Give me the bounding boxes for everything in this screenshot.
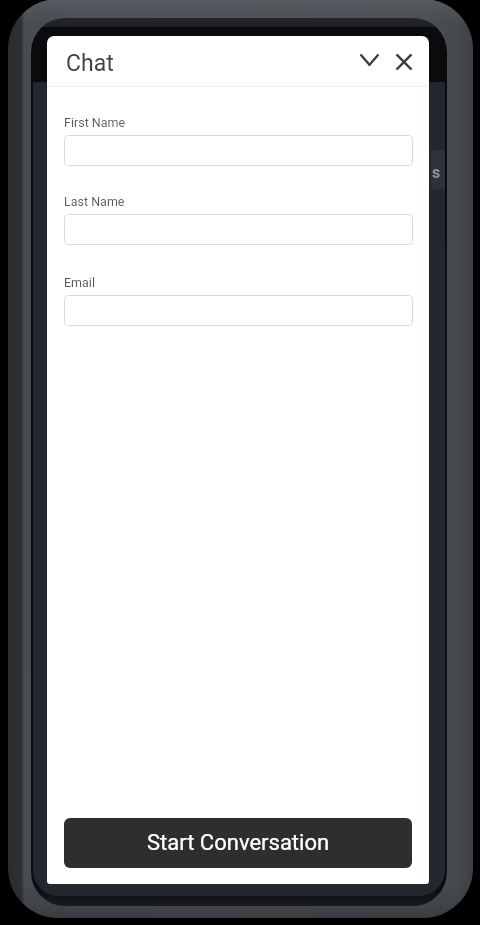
button[interactable]: Start Conversation xyxy=(64,818,412,868)
staticText: Start Conversation xyxy=(147,830,330,856)
button[interactable] xyxy=(64,214,413,245)
staticText: s xyxy=(432,163,441,182)
staticText: Last Name xyxy=(64,194,125,209)
button[interactable]: Minimize chat xyxy=(351,42,387,78)
button[interactable] xyxy=(64,135,413,166)
button[interactable] xyxy=(64,295,413,326)
staticText: First Name xyxy=(64,115,126,130)
staticText: Email xyxy=(64,275,95,290)
button[interactable]: Close chat xyxy=(386,44,422,80)
staticText: Chat xyxy=(66,50,114,77)
